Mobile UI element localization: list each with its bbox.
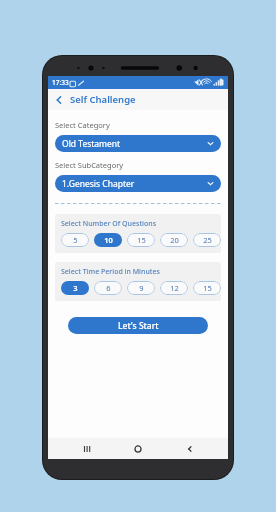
- staticText: 9: [139, 283, 144, 293]
- staticText: Select SubCategory: [55, 160, 124, 170]
- staticText: 1.Genesis Chapter: [62, 178, 207, 190]
- button[interactable]: Home: [125, 438, 151, 459]
- staticText: 20: [170, 235, 179, 245]
- staticText: 6: [106, 283, 111, 293]
- button[interactable]: Let's Start: [68, 317, 208, 334]
- button[interactable]: Recent apps: [74, 438, 100, 459]
- staticText: 10: [104, 235, 113, 245]
- staticText: 17:33: [52, 78, 69, 87]
- staticText: 3: [73, 283, 78, 293]
- button[interactable]: Back: [51, 92, 67, 108]
- button[interactable]: 15: [127, 233, 155, 247]
- button[interactable]: Back: [177, 438, 203, 459]
- staticText: 25: [203, 235, 212, 245]
- button[interactable]: 20: [160, 233, 188, 247]
- button[interactable]: Old Testament: [55, 135, 221, 152]
- staticText: 15: [203, 283, 212, 293]
- button[interactable]: 6: [94, 281, 122, 295]
- staticText: Select Category: [55, 120, 110, 130]
- staticText: Self Challenge: [70, 93, 136, 106]
- staticText: Select Number Of Questions: [61, 219, 157, 229]
- staticText: Select Time Period in Minutes: [61, 267, 160, 277]
- button[interactable]: 3: [61, 281, 89, 295]
- button[interactable]: 25: [193, 233, 221, 247]
- button[interactable]: 15: [193, 281, 221, 295]
- staticText: 15: [137, 235, 146, 245]
- button[interactable]: 9: [127, 281, 155, 295]
- button[interactable]: 5: [61, 233, 89, 247]
- button[interactable]: 10: [94, 233, 122, 247]
- staticText: 5: [73, 235, 78, 245]
- staticText: Old Testament: [62, 138, 207, 150]
- button[interactable]: 12: [160, 281, 188, 295]
- button[interactable]: 1.Genesis Chapter: [55, 175, 221, 192]
- staticText: Let's Start: [118, 320, 159, 332]
- staticText: 12: [170, 283, 179, 293]
